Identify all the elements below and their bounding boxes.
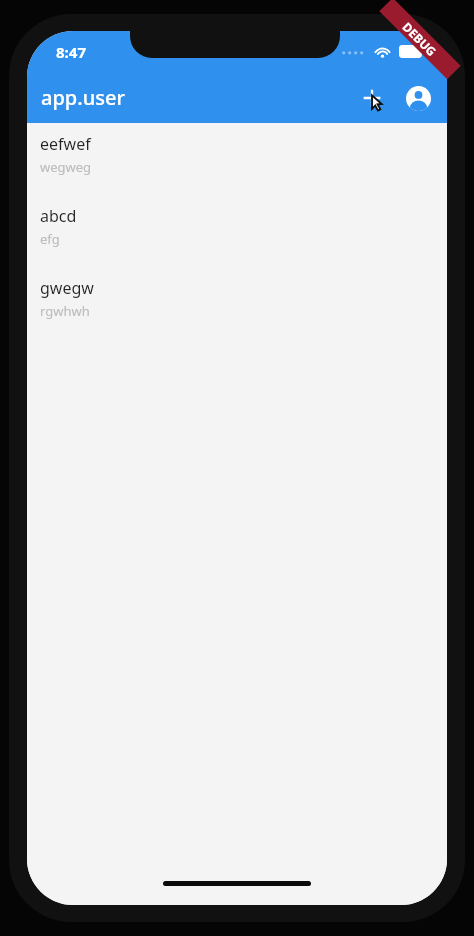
staticText: abcd [40,205,77,227]
button[interactable]: abcd [27,195,447,267]
button[interactable]: Add [349,75,395,121]
staticText: eefwef [40,133,91,155]
staticText: wegweg [40,158,92,176]
button[interactable]: Account [395,75,441,121]
staticText: gwegw [40,277,94,299]
button[interactable]: gwegw [27,267,447,339]
staticText: DEBUG [380,0,459,78]
staticText: app.user [41,84,125,111]
staticText: rgwhwh [40,302,90,320]
staticText: efg [40,230,60,248]
button[interactable]: eefwef [27,123,447,195]
staticText: 8:47 [56,42,86,62]
